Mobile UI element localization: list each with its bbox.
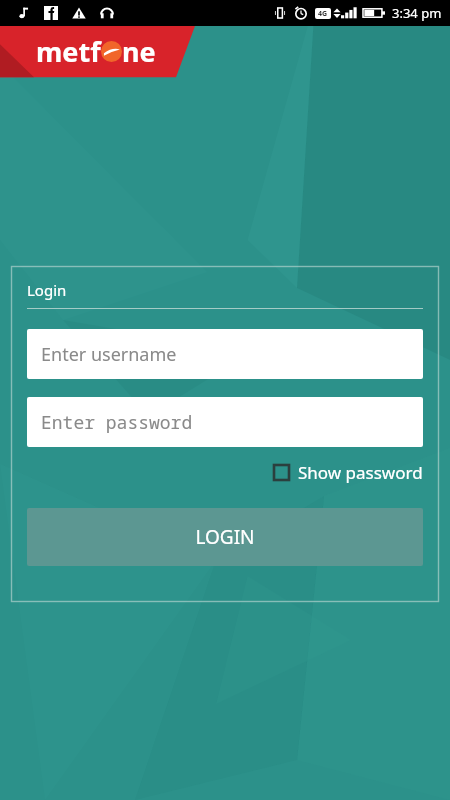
button[interactable]: LOGIN xyxy=(27,508,423,566)
staticText: ne xyxy=(122,33,156,70)
button[interactable]: Enter username xyxy=(27,329,423,379)
button[interactable]: Enter password xyxy=(27,397,423,447)
staticText: 3:34 pm xyxy=(392,4,442,22)
staticText: LOGIN xyxy=(195,524,255,550)
staticText: Enter password xyxy=(41,410,193,435)
staticText: Login xyxy=(27,280,67,300)
staticText: metf xyxy=(36,33,101,70)
staticText: Show password xyxy=(298,461,423,484)
staticText: 4G xyxy=(318,9,328,19)
button[interactable]: Show password xyxy=(273,457,423,488)
staticText: Enter username xyxy=(41,342,177,367)
